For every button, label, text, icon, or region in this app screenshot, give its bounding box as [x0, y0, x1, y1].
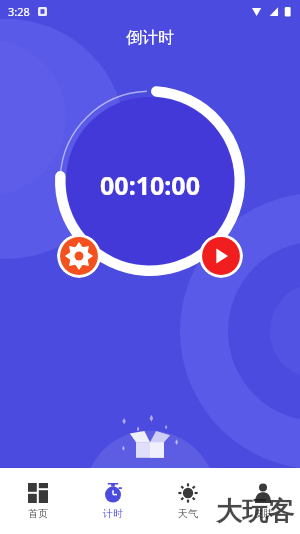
button[interactable]: 开始	[199, 234, 243, 278]
button[interactable]: 设置	[57, 234, 101, 278]
staticText: 皮肤	[253, 507, 273, 520]
button[interactable]: 皮肤	[225, 468, 300, 534]
button[interactable]: 首页	[0, 468, 75, 534]
staticText: 首页	[28, 507, 48, 520]
staticText: 天气	[178, 507, 198, 520]
button[interactable]: 天气	[150, 468, 225, 534]
staticText: 3:28	[8, 4, 30, 19]
staticText: 大玩客	[216, 495, 294, 528]
staticText: 计时	[103, 507, 123, 520]
button[interactable]: 计时	[75, 468, 150, 534]
staticText: 00:10:00	[100, 168, 200, 202]
staticText: 倒计时	[126, 28, 174, 48]
